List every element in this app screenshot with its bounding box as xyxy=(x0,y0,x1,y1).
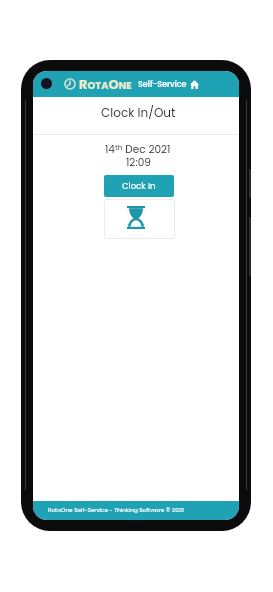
staticText: 12:09 xyxy=(126,155,151,170)
button[interactable]: Clock In xyxy=(104,175,174,197)
staticText: ROTAONE xyxy=(79,75,132,93)
staticText: Clock In/Out xyxy=(101,104,176,121)
staticText: Self-Service xyxy=(138,79,187,90)
staticText: RotaOne Self-Service - Thinking Software… xyxy=(48,506,184,514)
button[interactable]: Home xyxy=(188,78,200,90)
staticText: Clock In xyxy=(122,180,156,192)
staticText: 14th Dec 2021 xyxy=(105,142,171,157)
button[interactable]: Clocked out status xyxy=(104,199,175,239)
